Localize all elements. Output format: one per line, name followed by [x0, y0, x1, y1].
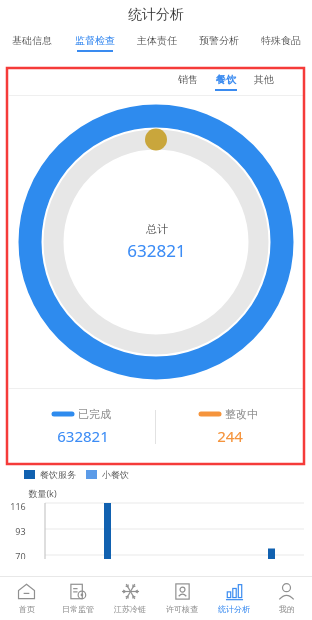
staticText: 江苏冷链: [114, 604, 146, 614]
button[interactable]: 销售: [169, 68, 207, 95]
button[interactable]: 其他: [245, 68, 283, 95]
button[interactable]: 主体责任: [126, 30, 188, 56]
button[interactable]: 我的: [260, 576, 312, 620]
staticText: 70: [15, 550, 26, 559]
staticText: 首页: [19, 604, 35, 614]
staticText: 主体责任: [137, 34, 177, 47]
staticText: 已完成: [78, 407, 111, 421]
staticText: 632821: [57, 426, 109, 446]
staticText: 116: [10, 500, 26, 512]
staticText: 我的: [279, 604, 295, 614]
button[interactable]: 江苏冷链: [104, 576, 156, 620]
staticText: 244: [217, 426, 243, 446]
button[interactable]: 首页: [0, 576, 52, 620]
staticText: 总计: [146, 222, 168, 236]
button[interactable]: 整改中: [156, 389, 303, 464]
staticText: 餐饮: [216, 73, 236, 86]
button[interactable]: 日常监管: [52, 576, 104, 620]
button[interactable]: 特殊食品: [250, 30, 312, 56]
button[interactable]: 基础信息: [0, 30, 63, 56]
button[interactable]: 许可核查: [156, 576, 208, 620]
staticText: 日常监管: [62, 604, 94, 614]
staticText: 基础信息: [12, 34, 52, 47]
button[interactable]: 统计分析: [208, 576, 260, 620]
staticText: 销售: [178, 73, 198, 86]
staticText: 整改中: [225, 407, 258, 421]
staticText: 632821: [127, 239, 186, 262]
staticText: 预警分析: [199, 34, 239, 47]
button[interactable]: 已完成: [9, 389, 155, 464]
staticText: 数量(k): [28, 487, 57, 499]
staticText: 许可核查: [166, 604, 198, 614]
button[interactable]: 餐饮: [207, 68, 245, 95]
staticText: 特殊食品: [261, 34, 301, 47]
staticText: 统计分析: [128, 6, 184, 24]
staticText: 小餐饮: [102, 469, 129, 480]
staticText: 其他: [254, 73, 274, 86]
staticText: 餐饮服务: [40, 469, 76, 480]
staticText: 监督检查: [75, 34, 115, 47]
staticText: 93: [15, 525, 26, 537]
button[interactable]: 预警分析: [188, 30, 250, 56]
button[interactable]: 监督检查: [63, 30, 126, 56]
staticText: 统计分析: [218, 604, 250, 614]
